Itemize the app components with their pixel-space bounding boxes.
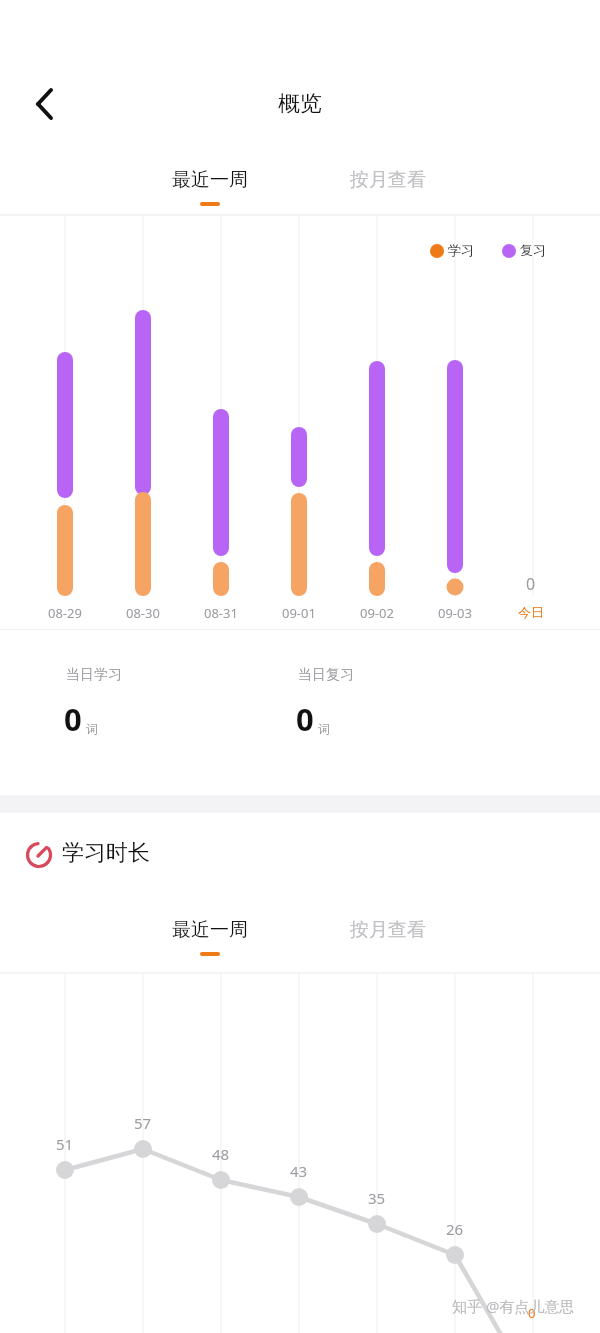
staticText: 最近一周 xyxy=(172,168,248,192)
staticText: 08-30 xyxy=(126,604,160,622)
button[interactable]: 按月查看 xyxy=(325,918,451,964)
staticText: 词 xyxy=(86,721,98,736)
button[interactable]: 最近一周 xyxy=(150,168,270,214)
staticText: 知乎 @有点儿意思 xyxy=(452,1296,575,1316)
staticText: 08-31 xyxy=(204,604,238,622)
staticText: 0 xyxy=(64,698,82,740)
staticText: 09-02 xyxy=(360,604,394,622)
staticText: 概览 xyxy=(0,90,600,118)
staticText: 08-29 xyxy=(48,604,82,622)
staticText: 0 xyxy=(528,1304,536,1322)
staticText: 51 xyxy=(56,1134,74,1154)
staticText: 当日学习 xyxy=(66,666,122,684)
staticText: 09-01 xyxy=(282,604,316,622)
staticText: 48 xyxy=(212,1144,230,1164)
button[interactable]: 按月查看 xyxy=(325,168,451,214)
staticText: 词 xyxy=(318,721,330,736)
staticText: 当日复习 xyxy=(298,666,354,684)
staticText: 学习时长 xyxy=(62,839,150,867)
staticText: 按月查看 xyxy=(350,168,426,192)
staticText: 57 xyxy=(134,1113,152,1133)
staticText: 0 xyxy=(296,698,314,740)
button[interactable]: 最近一周 xyxy=(150,918,270,964)
staticText: 按月查看 xyxy=(350,918,426,942)
staticText: 0 xyxy=(526,573,536,595)
staticText: 最近一周 xyxy=(172,918,248,942)
staticText: 26 xyxy=(446,1219,464,1239)
staticText: 09-03 xyxy=(438,604,472,622)
staticText: 学习 xyxy=(448,242,474,258)
staticText: 35 xyxy=(368,1188,386,1208)
button[interactable]: Back xyxy=(20,80,68,128)
staticText: 今日 xyxy=(518,604,544,620)
staticText: 复习 xyxy=(520,242,546,258)
staticText: 43 xyxy=(290,1161,308,1181)
